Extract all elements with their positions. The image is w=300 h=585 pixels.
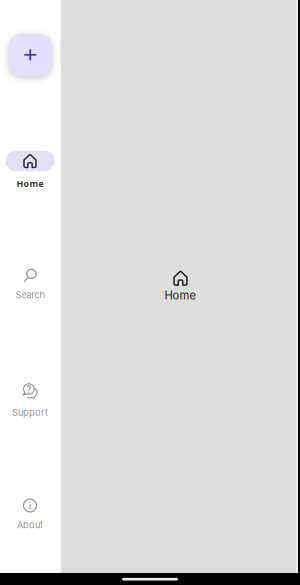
- staticText: About: [17, 519, 43, 530]
- button[interactable]: Search: [2, 255, 58, 295]
- staticText: Support: [12, 407, 48, 418]
- button[interactable]: Home: [2, 141, 58, 181]
- staticText: Home: [16, 177, 43, 189]
- button[interactable]: New: [9, 34, 52, 76]
- staticText: Home: [164, 289, 196, 302]
- button[interactable]: Support: [2, 370, 58, 410]
- staticText: Search: [15, 289, 44, 300]
- button[interactable]: About: [2, 485, 58, 525]
